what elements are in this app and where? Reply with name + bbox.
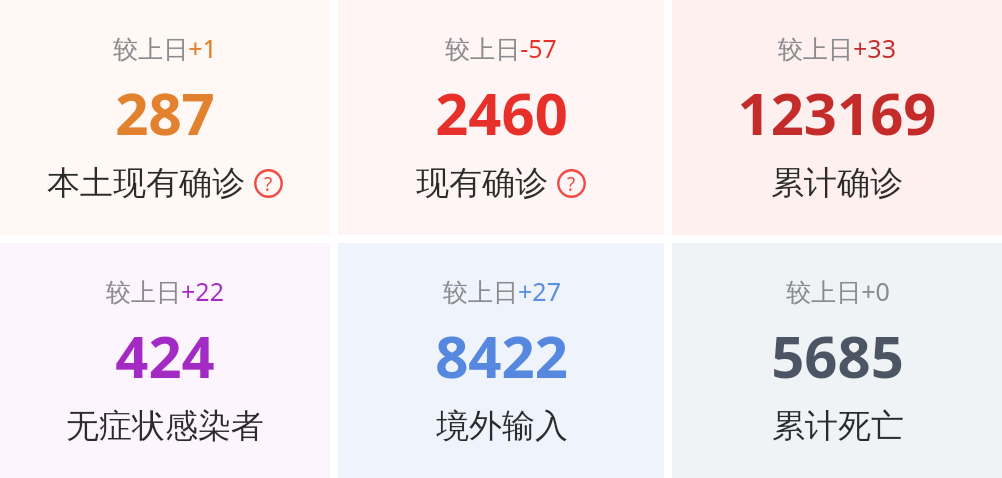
staticText: 较上日+22 bbox=[106, 274, 224, 308]
staticText: ? bbox=[567, 171, 576, 197]
staticText: 现有确诊 bbox=[416, 162, 548, 204]
button[interactable]: 较上日+1 bbox=[0, 0, 330, 235]
staticText: ? bbox=[264, 171, 273, 197]
staticText: 5685 bbox=[771, 316, 904, 395]
button[interactable]: 说明 bbox=[557, 169, 586, 198]
staticText: 境外输入 bbox=[436, 405, 568, 447]
staticText: 累计确诊 bbox=[771, 162, 903, 204]
staticText: 累计死亡 bbox=[772, 405, 904, 447]
staticText: 较上日+0 bbox=[786, 274, 890, 308]
staticText: 本土现有确诊 bbox=[47, 162, 245, 204]
staticText: 较上日+33 bbox=[778, 31, 896, 65]
staticText: 无症状感染者 bbox=[66, 405, 264, 447]
button[interactable]: 较上日+22 bbox=[0, 243, 330, 478]
button[interactable]: 说明 bbox=[254, 169, 283, 198]
staticText: 较上日+1 bbox=[113, 31, 217, 65]
staticText: 8422 bbox=[435, 316, 568, 395]
button[interactable]: 较上日+27 bbox=[338, 243, 664, 478]
button[interactable]: 较上日-57 bbox=[338, 0, 664, 235]
staticText: 较上日-57 bbox=[445, 31, 557, 65]
staticText: 424 bbox=[115, 316, 215, 395]
staticText: 123169 bbox=[737, 73, 937, 152]
staticText: 较上日+27 bbox=[443, 274, 561, 308]
staticText: 2460 bbox=[435, 73, 568, 152]
staticText: 287 bbox=[115, 73, 215, 152]
button[interactable]: 较上日+0 bbox=[672, 243, 1002, 478]
button[interactable]: 较上日+33 bbox=[672, 0, 1002, 235]
